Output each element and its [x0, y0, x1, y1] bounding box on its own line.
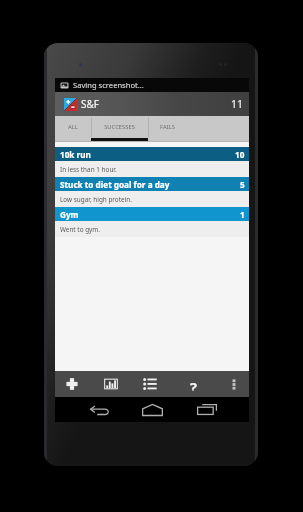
button[interactable]: Help [180, 371, 206, 397]
button[interactable]: More options [221, 371, 247, 397]
staticText: ALL [68, 123, 78, 131]
staticText: Low sugar, high protein. [60, 195, 132, 204]
staticText: SUCCESSES [104, 123, 135, 131]
button[interactable]: FAILS [148, 116, 187, 142]
button[interactable]: Statistics [98, 371, 124, 397]
button[interactable]: S&F [55, 92, 249, 116]
staticText: ? [190, 377, 197, 391]
button[interactable]: Add [59, 371, 85, 397]
staticText: 5 [240, 179, 245, 190]
staticText: 1 [240, 209, 245, 220]
staticText: S&F [81, 97, 99, 111]
button[interactable]: Home [138, 397, 166, 422]
button[interactable]: Gym [55, 207, 249, 237]
staticText: Gym [60, 209, 79, 220]
button[interactable]: SUCCESSES [91, 116, 148, 142]
button[interactable]: Back [85, 397, 113, 422]
button[interactable]: Recent apps [193, 397, 221, 422]
button[interactable]: Stuck to diet goal for a day [55, 177, 249, 207]
staticText: Saving screenshot... [73, 80, 144, 90]
staticText: 10k run [60, 149, 91, 160]
button[interactable]: 10k run [55, 147, 249, 177]
staticText: Stuck to diet goal for a day [60, 179, 170, 190]
staticText: 10 [235, 149, 245, 160]
staticText: Went to gym. [60, 225, 101, 234]
button[interactable]: ALL [55, 116, 91, 142]
staticText: In less than 1 hour. [60, 165, 117, 174]
button[interactable]: List [137, 371, 163, 397]
staticText: FAILS [160, 123, 175, 131]
staticText: 11 [231, 97, 244, 111]
